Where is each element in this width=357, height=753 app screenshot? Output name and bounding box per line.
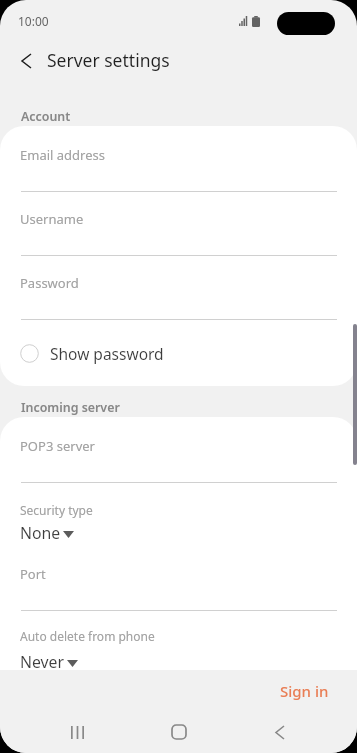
staticText: POP3 server: [20, 437, 95, 455]
button[interactable]: Navigate up: [8, 43, 44, 79]
staticText: Incoming server: [21, 399, 120, 416]
staticText: Username: [20, 210, 84, 228]
staticText: Show password: [50, 343, 164, 364]
button[interactable]: Recent apps: [53, 711, 101, 753]
button[interactable]: Home: [155, 711, 203, 753]
staticText: None: [20, 522, 61, 544]
staticText: Sign in: [280, 681, 329, 701]
staticText: Account: [21, 108, 71, 125]
button[interactable]: Never: [20, 651, 65, 673]
staticText: Security type: [20, 502, 93, 518]
button[interactable]: None: [20, 522, 61, 544]
staticText: Password: [20, 274, 79, 292]
staticText: Auto delete from phone: [20, 628, 155, 644]
button[interactable]: Show password: [0, 330, 357, 376]
staticText: Server settings: [47, 48, 170, 72]
staticText: Email address: [20, 146, 105, 164]
staticText: Never: [20, 651, 65, 673]
button[interactable]: Sign in: [264, 674, 345, 708]
button[interactable]: Back: [256, 711, 304, 753]
staticText: 10:00: [18, 13, 49, 29]
staticText: Port: [20, 565, 46, 583]
